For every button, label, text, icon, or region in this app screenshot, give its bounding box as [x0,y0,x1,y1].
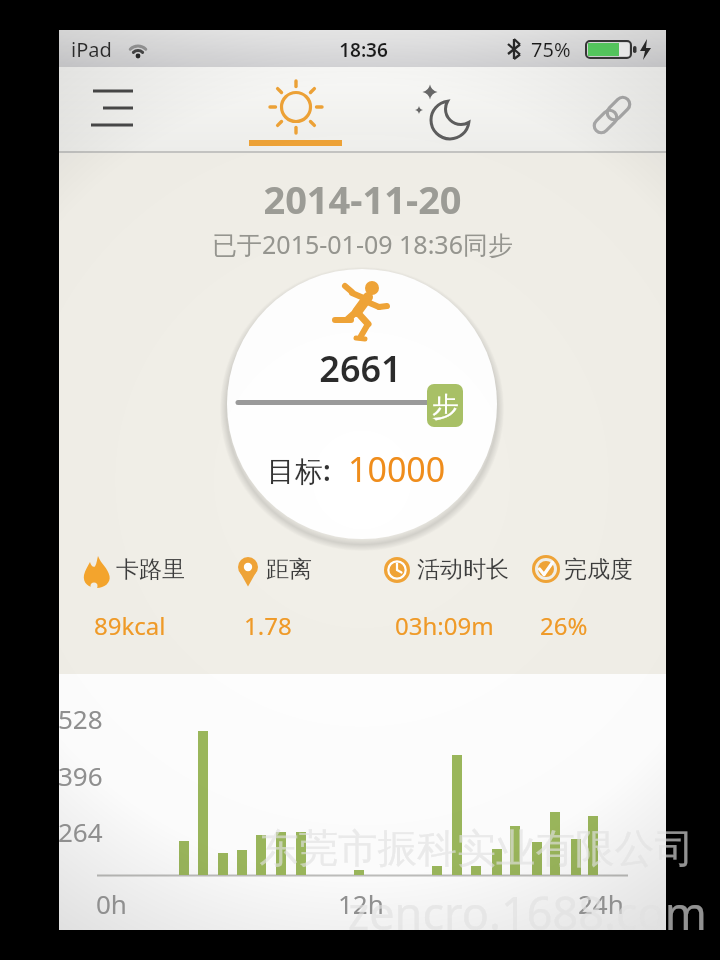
staticText: 2661 [319,344,402,393]
staticText: 完成度 [564,555,633,584]
staticText: 东莞市振科实业有限公司 [259,824,694,874]
staticText: 2014-11-20 [263,173,462,225]
staticText: 10000 [348,446,446,492]
staticText: 目标: [267,451,331,489]
staticText: 18:36 [339,37,388,63]
staticText: 已于2015-01-09 18:36同步 [212,227,513,261]
staticText: iPad [71,36,112,63]
button[interactable] [80,75,150,140]
button[interactable] [570,72,655,148]
staticText: 活动时长 [417,555,509,584]
staticText: 卡路里 [116,555,185,584]
button[interactable] [248,72,344,148]
staticText: 1.78 [244,609,292,642]
staticText: 距离 [266,555,312,584]
staticText: 12h [338,886,384,921]
staticText: 396 [58,758,103,793]
button[interactable] [402,72,498,148]
staticText: 528 [58,701,103,736]
staticText: 89kcal [94,609,166,642]
staticText: zencro.1688.com [348,882,707,943]
staticText: 0h [96,886,127,921]
staticText: 24h [578,886,624,921]
staticText: 264 [58,814,103,849]
staticText: 26% [540,609,588,642]
staticText: 03h:09m [395,609,494,642]
staticText: 75% [531,36,571,63]
staticText: 步 [432,390,459,424]
